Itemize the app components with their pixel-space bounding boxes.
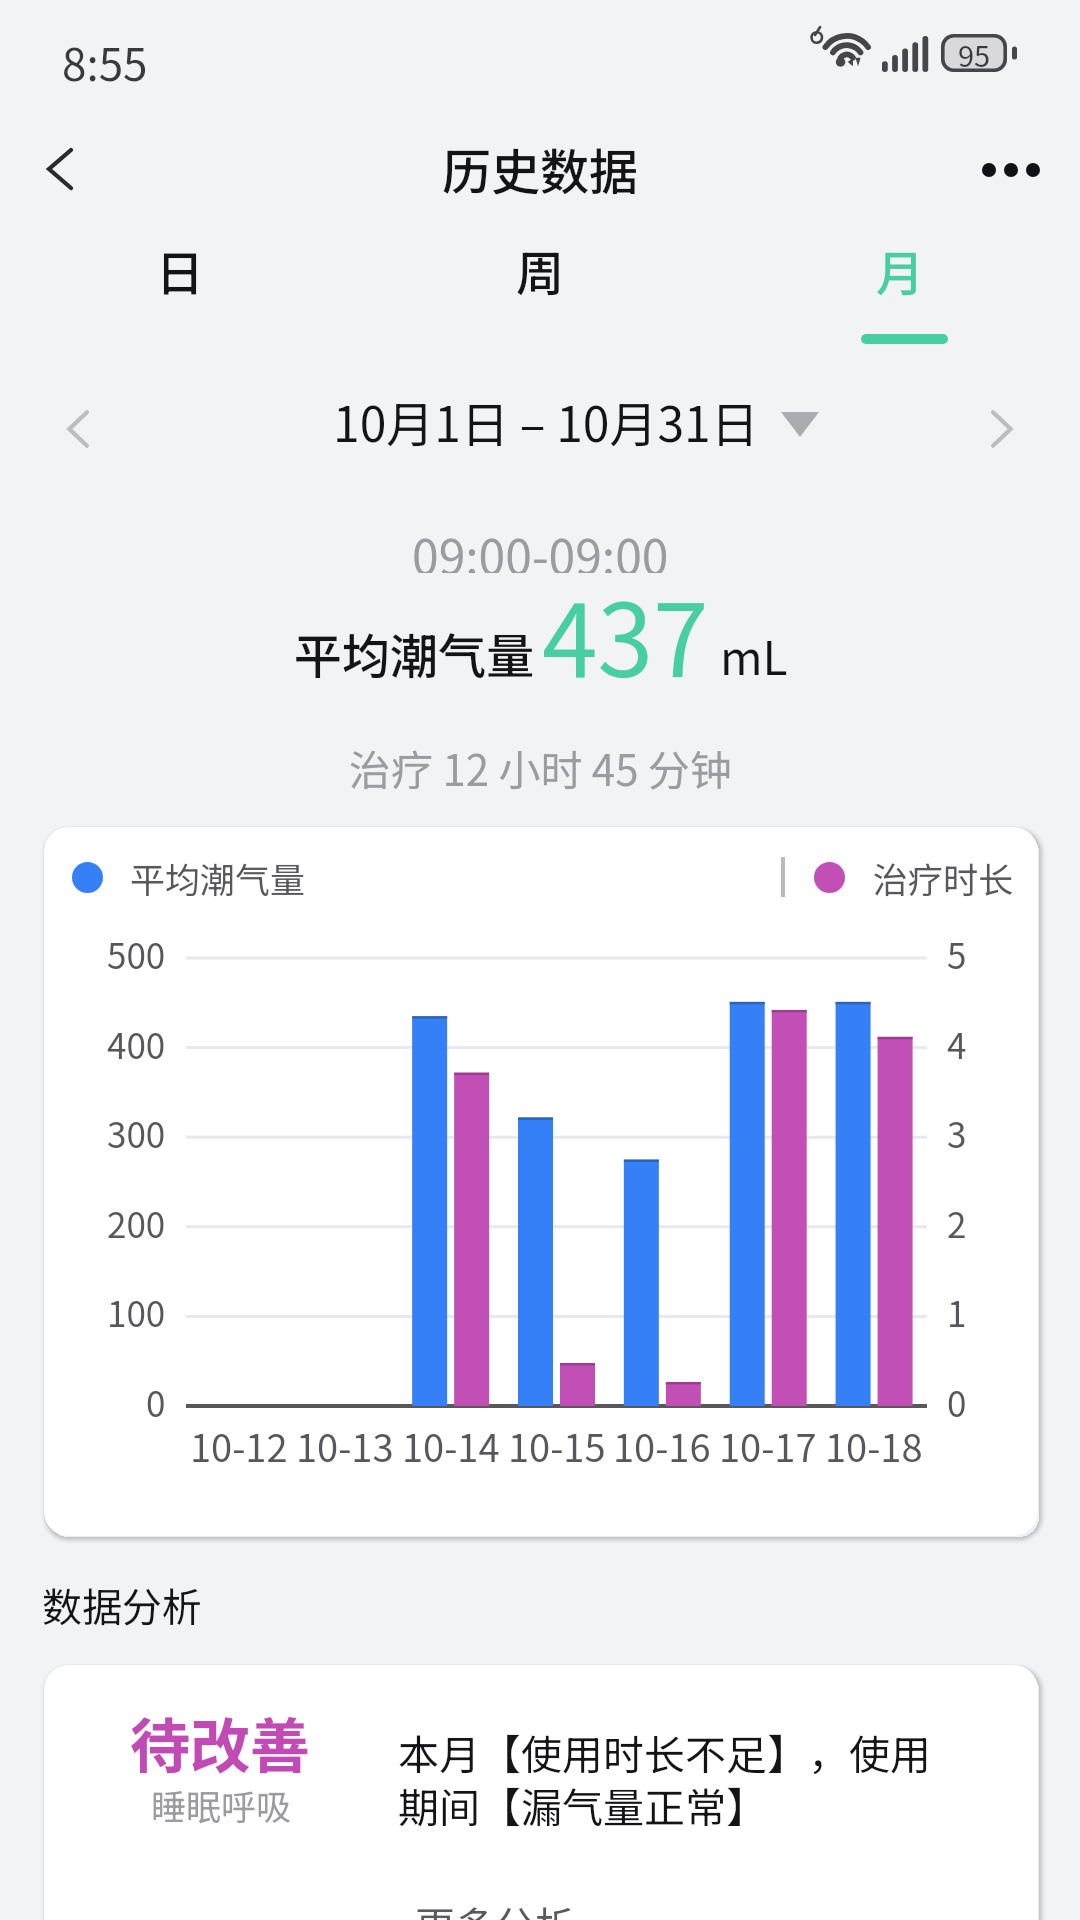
staticText: 睡眠呼吸 (151, 1779, 292, 1830)
staticText: 10-14 (402, 1418, 500, 1473)
staticText: 0 (146, 1376, 166, 1426)
staticText: 待改善 (130, 1698, 310, 1785)
button[interactable]: 日 (0, 228, 360, 348)
button[interactable]: 待改善 (44, 1665, 1038, 1920)
staticText: 8:55 (62, 30, 148, 94)
staticText: 2 (947, 1197, 967, 1247)
staticText: 期间【漏气量正常】 (398, 1775, 767, 1834)
staticText: 10月1日 – 10月31日 (333, 386, 759, 456)
staticText: 200 (107, 1197, 166, 1247)
staticText: mL (720, 622, 788, 689)
staticText: 4 (947, 1018, 967, 1068)
staticText: 500 (107, 928, 166, 978)
button[interactable]: Back (5, 113, 117, 225)
staticText: 10-18 (825, 1418, 923, 1473)
staticText: 周 (516, 235, 565, 305)
staticText: 本月【使用时长不足】，使用 (398, 1722, 931, 1781)
button[interactable]: Select date range (300, 382, 860, 468)
staticText: 1 (947, 1286, 967, 1336)
button[interactable]: Next period (960, 388, 1042, 470)
staticText: 日 (156, 235, 205, 305)
staticText: 100 (107, 1286, 166, 1336)
button[interactable]: 月 (720, 228, 1080, 348)
staticText: 10-16 (613, 1418, 711, 1473)
staticText: 0 (947, 1376, 967, 1426)
staticText: 10-13 (296, 1418, 394, 1473)
staticText: 治疗时长 (873, 852, 1014, 902)
staticText: 300 (107, 1107, 166, 1157)
button[interactable]: More options (955, 114, 1067, 226)
staticText: 更多分析 (415, 1895, 575, 1920)
staticText: 历史数据 (442, 133, 639, 204)
staticText: 5 (947, 928, 967, 978)
staticText: 平均潮气量 (294, 618, 535, 688)
button[interactable]: Previous period (38, 388, 120, 470)
staticText: 平均潮气量 (130, 852, 306, 902)
staticText: 治疗 12 小时 45 分钟 (349, 737, 732, 791)
staticText: 月 (876, 235, 925, 305)
staticText: 09:00-09:00 (412, 519, 669, 573)
staticText: 10-15 (508, 1418, 606, 1473)
staticText: 数据分析 (42, 1576, 202, 1634)
button[interactable]: 更多分析 (345, 1889, 645, 1920)
staticText: 400 (107, 1018, 166, 1068)
staticText: 3 (947, 1107, 967, 1157)
staticText: 437 (542, 561, 709, 706)
staticText: 10-12 (190, 1418, 288, 1473)
staticText: 95 (958, 33, 991, 71)
staticText: 10-17 (719, 1418, 817, 1473)
button[interactable]: 周 (360, 228, 720, 348)
